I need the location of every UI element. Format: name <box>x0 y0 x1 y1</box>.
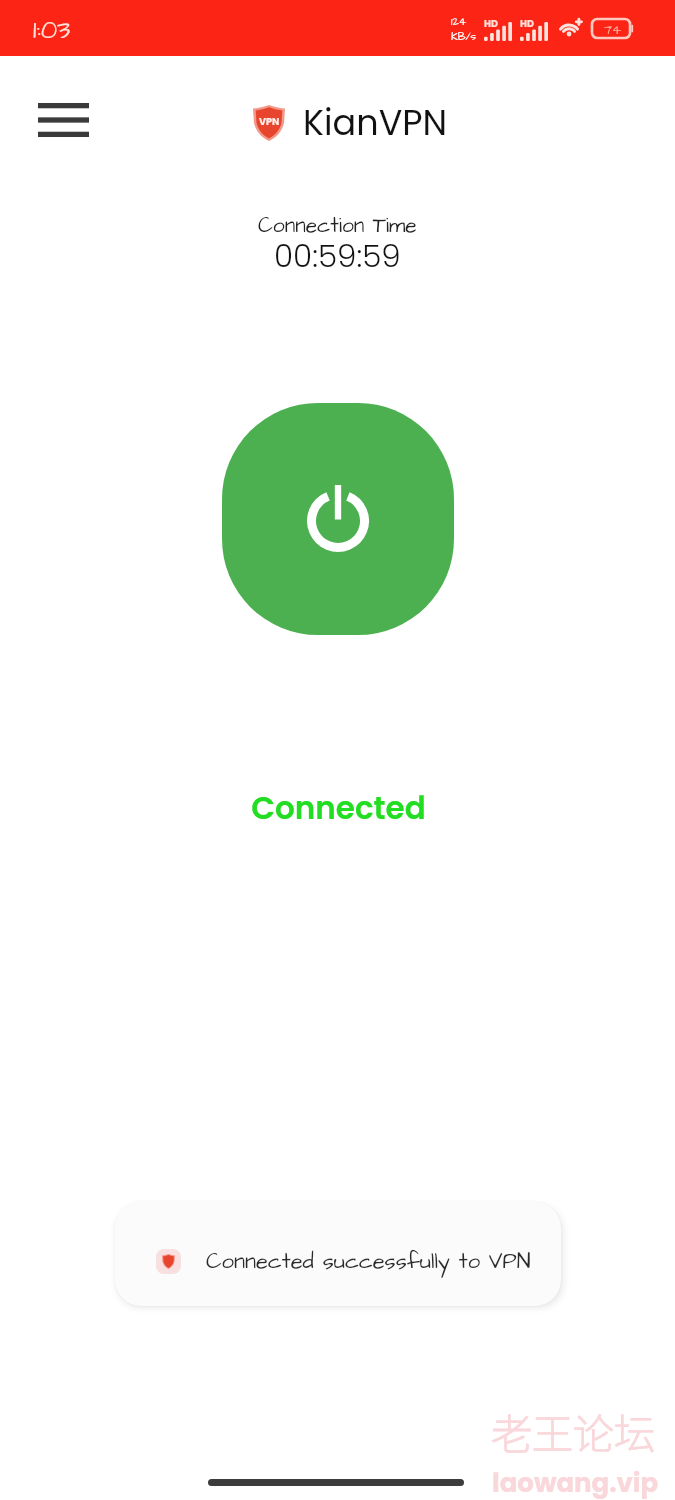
staticText: KianVPN <box>303 98 448 147</box>
staticText: 74 <box>604 21 621 39</box>
staticText: VPN <box>259 115 280 128</box>
staticText: 老王论坛 <box>491 1401 655 1460</box>
button[interactable]: Power toggle <box>222 403 454 635</box>
staticText: Connection Time <box>258 211 417 240</box>
staticText: Connected <box>1 786 675 829</box>
button[interactable]: Connected successfully to VPN <box>115 1202 561 1306</box>
staticText: laowang.vip <box>492 1465 659 1500</box>
staticText: HD <box>484 17 498 30</box>
staticText: 124 <box>451 14 467 29</box>
staticText: Connected successfully to VPN <box>206 1246 531 1277</box>
staticText: HD <box>520 17 534 30</box>
button[interactable]: Menu <box>35 92 91 148</box>
staticText: 1:03 <box>33 12 71 48</box>
staticText: KB/s <box>451 29 477 44</box>
staticText: 00:59:59 <box>274 234 401 277</box>
